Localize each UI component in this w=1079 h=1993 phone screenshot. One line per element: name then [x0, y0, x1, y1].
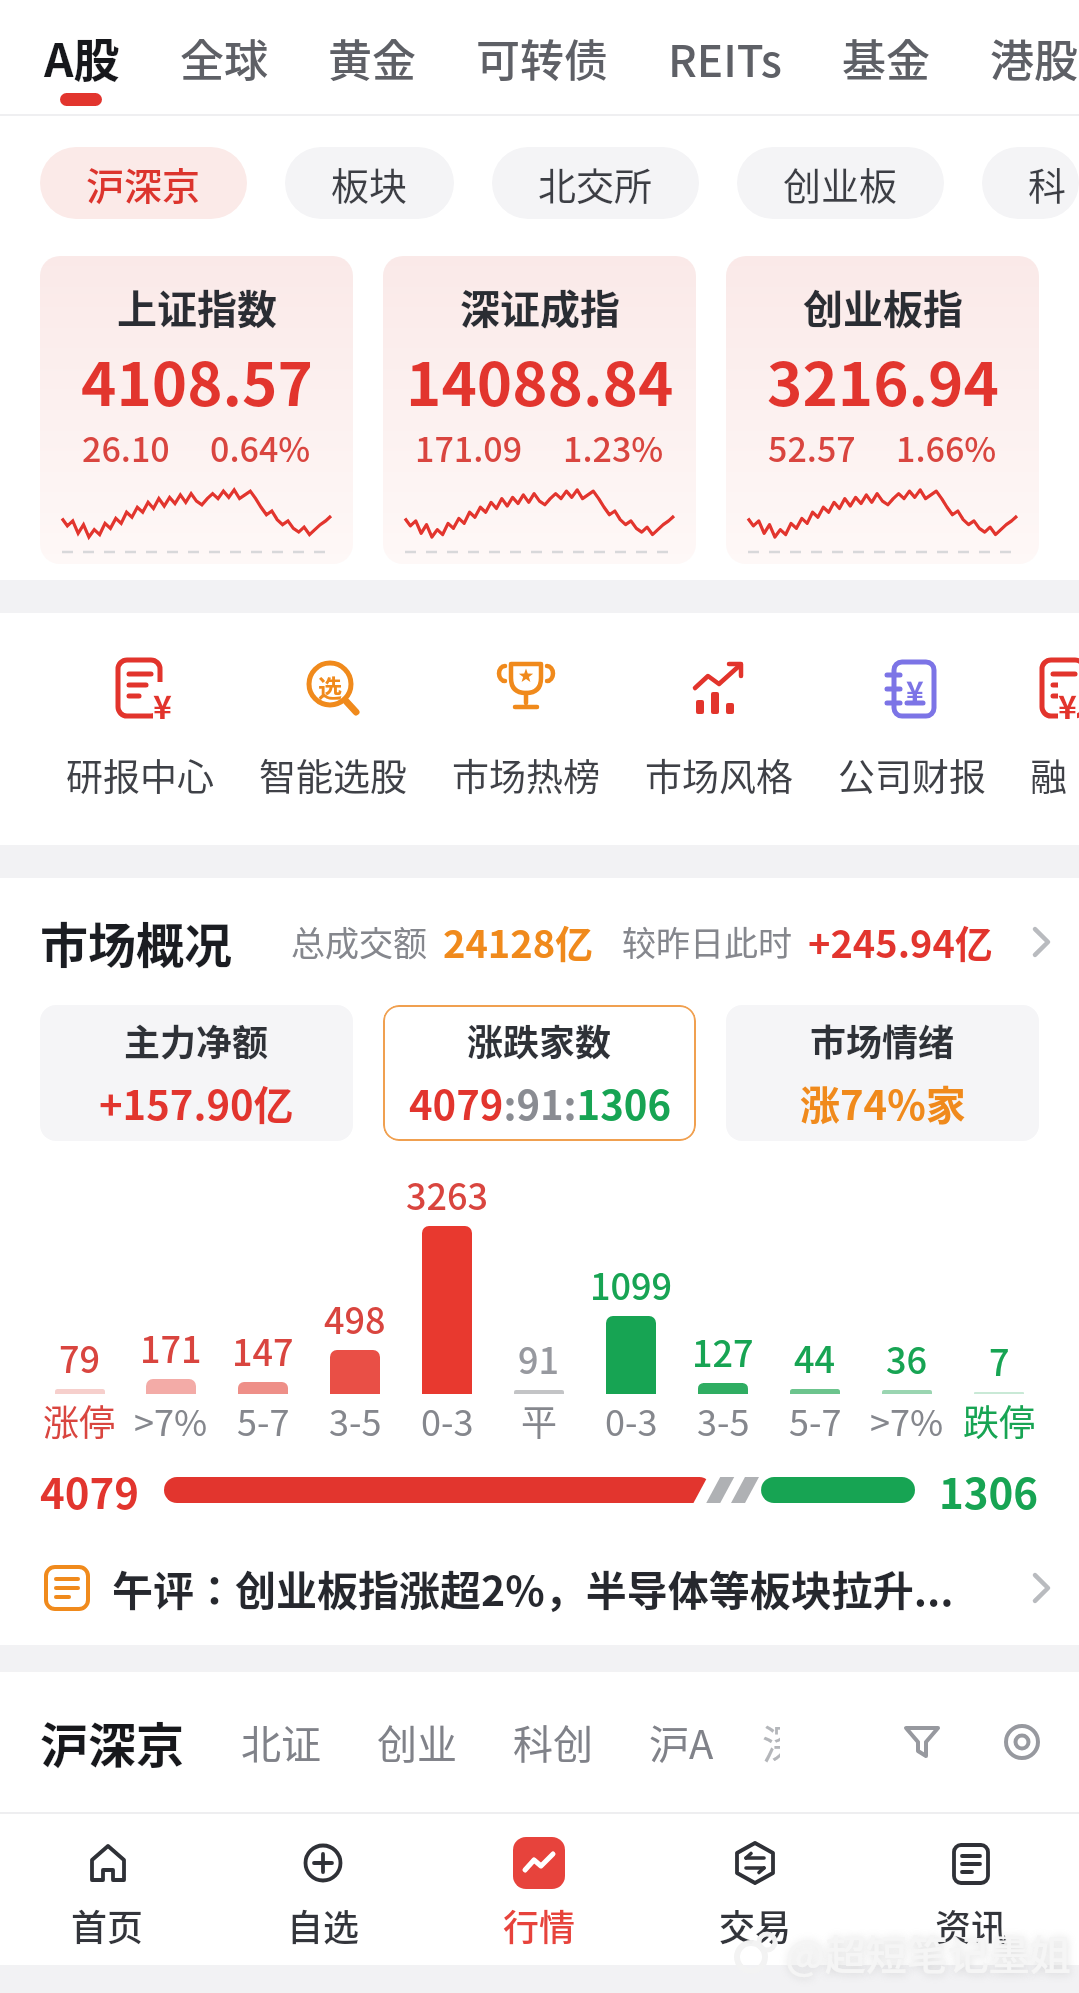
button[interactable]: 创业板指 [726, 256, 1039, 564]
staticText: +245.94亿 [808, 914, 993, 969]
staticText: >7% [134, 1394, 208, 1446]
staticText: 0-3 [605, 1394, 658, 1446]
button[interactable]: 市场概况 [0, 878, 1079, 1005]
button[interactable]: 基金 [842, 26, 930, 90]
staticText: ¥ [906, 668, 924, 711]
button[interactable]: 科创 [513, 1713, 593, 1771]
staticText: 171.09 [415, 423, 523, 472]
staticText: 24128亿 [443, 914, 594, 969]
staticText: 涨74%家 [800, 1074, 966, 1132]
button[interactable]: 沪深京 [40, 147, 247, 219]
staticText: 选 [318, 669, 342, 704]
button[interactable]: 深证成指 [383, 256, 696, 564]
staticText: 科创板 [1028, 156, 1033, 211]
staticText: 公司财报 [838, 748, 986, 802]
button[interactable]: 北交所 [492, 147, 699, 219]
button[interactable]: 交易 [647, 1814, 863, 1965]
staticText: 涨跌家数 [467, 1014, 612, 1066]
staticText: 板块 [331, 156, 408, 211]
staticText: 4079:91:1306 [409, 1074, 671, 1132]
button[interactable]: 自选 [215, 1814, 431, 1965]
button[interactable]: 选 [258, 656, 408, 802]
staticText: 26.10 [82, 423, 170, 472]
staticText: 总成交额 [291, 917, 427, 966]
staticText: 北交所 [538, 156, 653, 211]
button[interactable]: 可转债 [476, 26, 608, 90]
button[interactable]: 全球 [180, 26, 268, 90]
button[interactable]: 黄金 [328, 26, 416, 90]
button[interactable]: 北证 [241, 1713, 321, 1771]
staticText: 研报中心 [66, 748, 214, 802]
staticText: 52.57 [768, 423, 856, 472]
staticText: 0.64% [210, 423, 311, 472]
staticText: 171 [140, 1321, 202, 1373]
button[interactable]: 午评：创业板指涨超2%，半导体等板块拉升... [0, 1530, 1079, 1645]
staticText: @超短笔记墨姐 [785, 1922, 1071, 1981]
button[interactable]: 上证指数 [40, 256, 353, 564]
staticText: 14088.84 [406, 336, 674, 423]
button[interactable]: 创业板 [737, 147, 944, 219]
staticText: 平 [521, 1394, 558, 1446]
button[interactable]: 行情 [431, 1814, 647, 1965]
button[interactable]: 涨跌家数 [383, 1005, 696, 1141]
button[interactable] [901, 1721, 943, 1763]
button[interactable]: 市场情绪 [726, 1005, 1039, 1141]
staticText: 深 [762, 1713, 780, 1771]
staticText: 44 [794, 1331, 836, 1383]
staticText: 498 [324, 1292, 386, 1344]
staticText: 5-7 [237, 1394, 290, 1446]
staticText: 融资融券 [1030, 748, 1079, 802]
staticText: 91 [518, 1332, 560, 1384]
staticText: 4079 [40, 1460, 140, 1521]
button[interactable]: ¥ [837, 656, 987, 802]
button[interactable]: 首页 [0, 1814, 215, 1965]
button[interactable]: 主力净额 [40, 1005, 353, 1141]
staticText: 深证成指 [460, 278, 620, 336]
staticText: 79 [59, 1331, 101, 1383]
staticText: 自选 [287, 1899, 360, 1951]
button[interactable] [1001, 1721, 1043, 1763]
staticText: 36 [886, 1332, 928, 1384]
staticText: 市场风格 [645, 748, 793, 802]
button[interactable]: 港股 [990, 26, 1078, 90]
staticText: 交易 [719, 1899, 792, 1951]
button[interactable]: ¥ [1030, 656, 1079, 802]
staticText: 市场热榜 [452, 748, 600, 802]
staticText: 3-5 [329, 1394, 382, 1446]
staticText: 午评：创业板指涨超2%，半导体等板块拉升... [112, 1558, 1031, 1617]
button[interactable]: 市场风格 [644, 656, 794, 802]
staticText: 市场情绪 [810, 1014, 955, 1066]
button[interactable]: 板块 [285, 147, 454, 219]
staticText: ¥ [1058, 682, 1077, 728]
button[interactable]: 沪深京 [40, 1707, 185, 1777]
button[interactable]: 市场热榜 [451, 656, 601, 802]
staticText: 首页 [71, 1899, 144, 1951]
button[interactable]: 资讯 [863, 1814, 1079, 1965]
staticText: 0-3 [421, 1394, 474, 1446]
staticText: 1.66% [896, 423, 997, 472]
staticText: 1.23% [563, 423, 664, 472]
staticText: 127 [692, 1325, 754, 1377]
button[interactable]: 科创板 [982, 147, 1079, 219]
staticText: 1306 [939, 1460, 1039, 1521]
staticText: 7 [989, 1334, 1010, 1386]
staticText: 资讯 [935, 1899, 1008, 1951]
staticText: 创业板 [783, 156, 898, 211]
button[interactable]: REITs [668, 26, 782, 90]
button[interactable]: 创业 [377, 1713, 457, 1771]
staticText: +157.90亿 [99, 1074, 294, 1132]
staticText: 沪深京 [86, 156, 201, 211]
staticText: 市场概况 [40, 907, 233, 977]
button[interactable]: 沪A [649, 1713, 714, 1771]
button[interactable]: A股 [44, 24, 120, 91]
staticText: 4108.57 [81, 336, 313, 423]
staticText: 147 [232, 1324, 294, 1376]
staticText: 上证指数 [117, 278, 277, 336]
staticText: >7% [870, 1394, 944, 1446]
staticText: 3216.94 [767, 336, 999, 423]
staticText: 涨停 [43, 1394, 116, 1446]
staticText: 5-7 [789, 1394, 842, 1446]
staticText: 较昨日此时 [622, 917, 792, 966]
button[interactable]: ¥ [65, 656, 215, 802]
staticText: 行情 [503, 1899, 576, 1951]
